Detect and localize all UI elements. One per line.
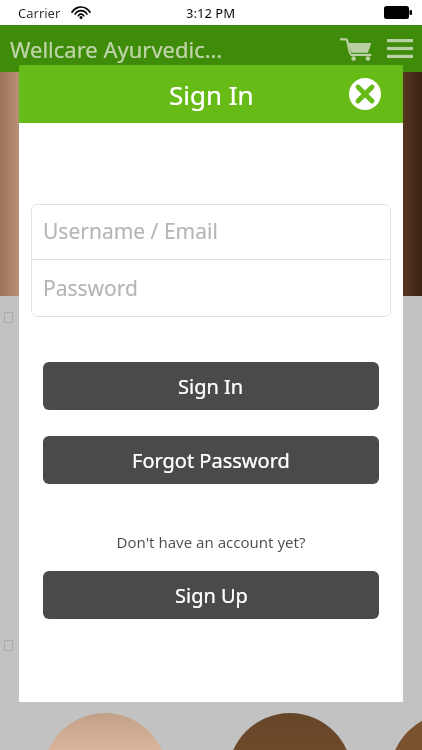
button[interactable]: Cart [332,25,378,72]
staticText: Sign In [169,77,254,112]
button[interactable]: Username / Email [31,204,391,259]
staticText: 3:12 PM [186,4,236,22]
button[interactable]: Close [349,78,381,110]
staticText: Carrier [18,4,61,22]
button[interactable]: Sign In [43,362,379,410]
button[interactable]: Forgot Password [43,436,379,484]
staticText: Sign Up [175,582,248,609]
staticText: Forgot Password [132,447,290,474]
staticText: Don't have an account yet? [19,532,403,552]
staticText: Username / Email [43,217,218,246]
button[interactable]: Menu [378,25,422,72]
button[interactable]: Sign Up [43,571,379,619]
staticText: Wellcare Ayurvedic… [10,34,332,64]
staticText: Password [43,274,138,303]
staticText: Sign In [178,373,244,400]
button[interactable]: Password [31,260,391,316]
